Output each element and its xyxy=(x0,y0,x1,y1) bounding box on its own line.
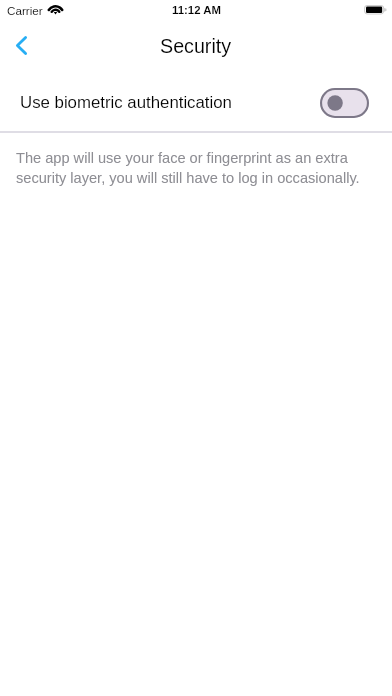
staticText: Use biometric authentication xyxy=(20,93,232,112)
button[interactable]: Back xyxy=(0,24,44,70)
staticText: Security xyxy=(160,35,232,57)
staticText: Carrier xyxy=(7,4,43,17)
staticText: The app will use your face or fingerprin… xyxy=(16,150,378,186)
staticText: 11:12 AM xyxy=(172,4,221,17)
button[interactable]: Use biometric authentication toggle xyxy=(320,88,369,118)
button[interactable]: Use biometric authentication xyxy=(0,72,392,132)
